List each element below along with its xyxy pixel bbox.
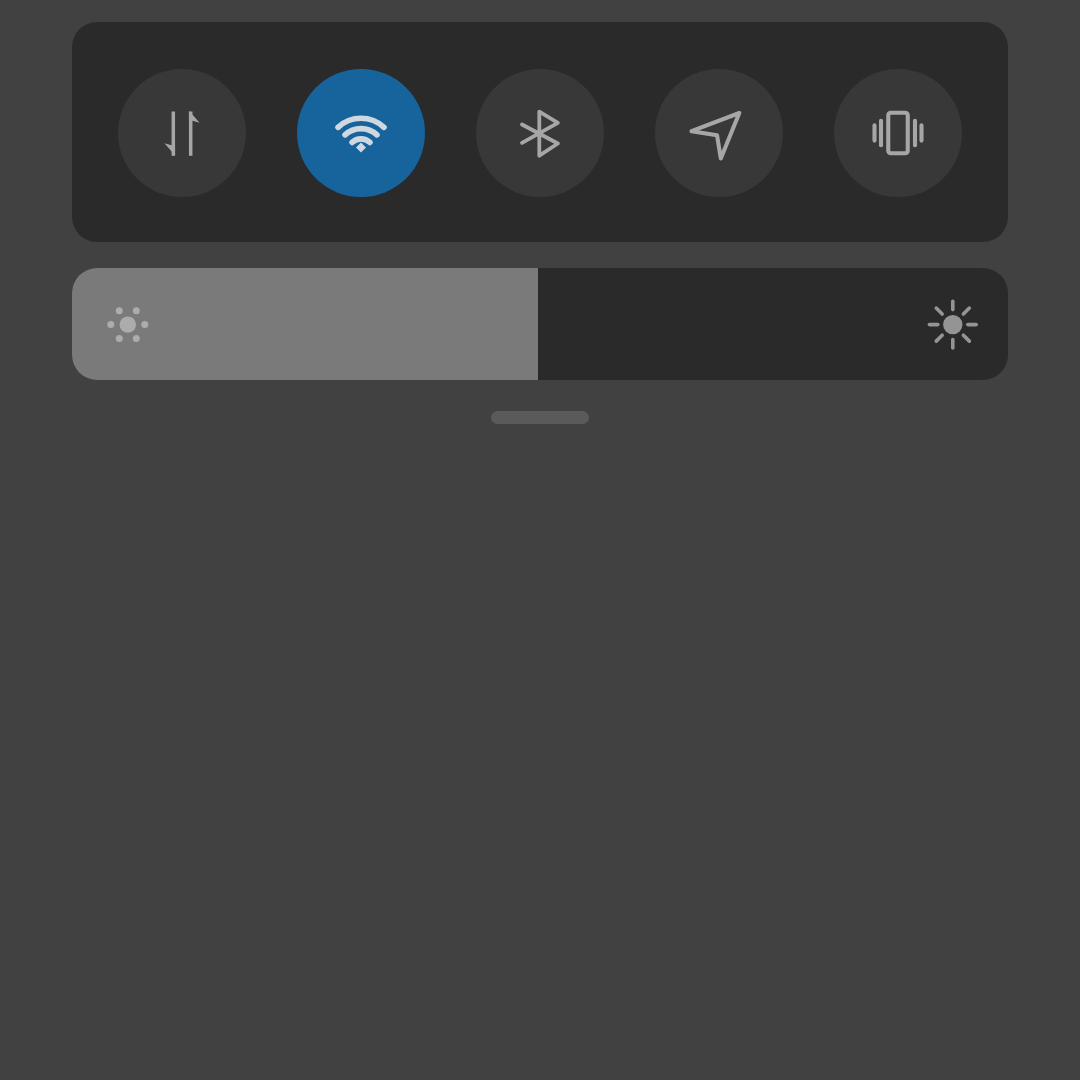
button[interactable]: Expand quick settings: [491, 411, 589, 424]
button[interactable]: Mobile data: [118, 69, 246, 197]
button[interactable]: Wi-Fi: [297, 69, 425, 197]
button[interactable]: Vibrate: [834, 69, 962, 197]
button[interactable]: Location: [655, 69, 783, 197]
button[interactable]: Bluetooth: [476, 69, 604, 197]
button[interactable]: Brightness: [72, 268, 1008, 380]
